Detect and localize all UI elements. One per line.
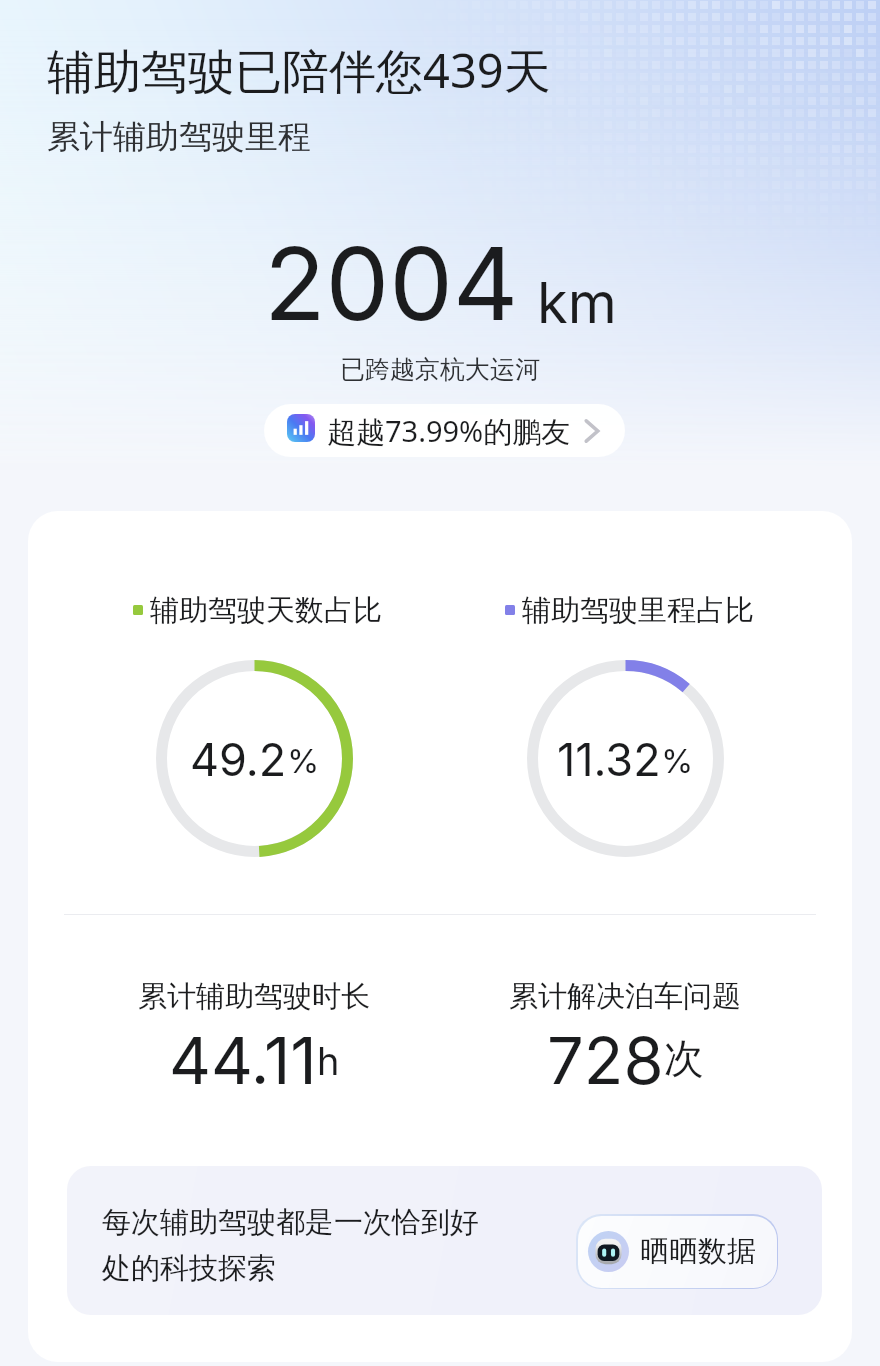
button[interactable]: 超越73.99%的鹏友 — [264, 404, 625, 457]
staticText: 49.2 — [190, 732, 287, 786]
staticText: 728 — [547, 1021, 664, 1100]
staticText: 辅助驾驶天数占比 — [150, 592, 382, 629]
staticText: % — [661, 741, 694, 781]
staticText: 已跨越京杭大运河 — [0, 354, 880, 385]
button[interactable]: 晒晒数据 — [576, 1214, 778, 1289]
staticText: 累计辅助驾驶里程 — [47, 116, 311, 158]
staticText: 11.32 — [557, 732, 661, 786]
staticText: h — [317, 1038, 340, 1084]
staticText: 辅助驾驶里程占比 — [522, 592, 754, 629]
staticText: 晒晒数据 — [640, 1233, 756, 1270]
staticText: 次 — [664, 1033, 704, 1083]
staticText: 辅助驾驶已陪伴您439天 — [47, 38, 551, 102]
other: More details — [584, 416, 600, 446]
staticText: % — [287, 741, 320, 781]
staticText: 累计辅助驾驶时长 — [138, 978, 370, 1015]
staticText: 每次辅助驾驶都是一次恰到好 处的科技探索 — [102, 1204, 479, 1287]
staticText: 累计解决泊车问题 — [509, 978, 741, 1015]
staticText: 超越73.99%的鹏友 — [327, 411, 571, 451]
staticText: 2004 — [264, 222, 519, 344]
staticText: 44.11 — [169, 1021, 317, 1100]
staticText: km — [537, 269, 617, 337]
